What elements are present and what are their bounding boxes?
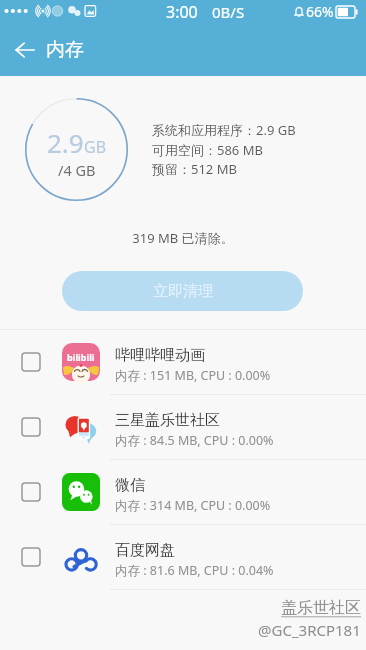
staticText: 三星盖乐世社区 (115, 411, 220, 430)
button[interactable]: bilibili (0, 330, 366, 394)
staticText: 内存 : 314 MB, CPU : 0.00% (115, 497, 271, 514)
staticText: 319 MB 已清除。 (0, 229, 366, 247)
staticText: /4 GB (58, 160, 96, 180)
staticText: bilibili (67, 351, 95, 363)
button[interactable]: Back (0, 27, 46, 73)
staticText: 立即清理 (153, 282, 213, 301)
button[interactable]: 微信 (0, 460, 366, 524)
staticText: 哔哩哔哩动画 (115, 346, 205, 365)
button[interactable]: 百度网盘 (0, 525, 366, 589)
button[interactable]: 三星盖乐世社区 (0, 395, 366, 459)
staticText: 0B/S (212, 2, 245, 22)
button[interactable]: 立即清理 (62, 271, 303, 311)
staticText: 预留：512 MB (152, 160, 237, 178)
staticText: 66% (306, 2, 334, 21)
staticText: 微信 (115, 476, 145, 495)
staticText: 可用空间：586 MB (152, 141, 263, 159)
staticText: 盖乐世社区 (281, 598, 361, 618)
staticText: 3:00 (166, 1, 198, 23)
staticText: 系统和应用程序：2.9 GB (152, 121, 296, 139)
staticText: GB (84, 136, 107, 158)
staticText: 百度网盘 (115, 541, 175, 560)
staticText: 内存 : 81.6 MB, CPU : 0.04% (115, 562, 274, 579)
staticText: 内存 : 84.5 MB, CPU : 0.00% (115, 432, 274, 449)
staticText: @GC_3RCP181 (258, 620, 361, 640)
staticText: 2.9 (47, 125, 84, 160)
staticText: 内存 (46, 38, 84, 62)
staticText: 内存 : 151 MB, CPU : 0.00% (115, 367, 271, 384)
